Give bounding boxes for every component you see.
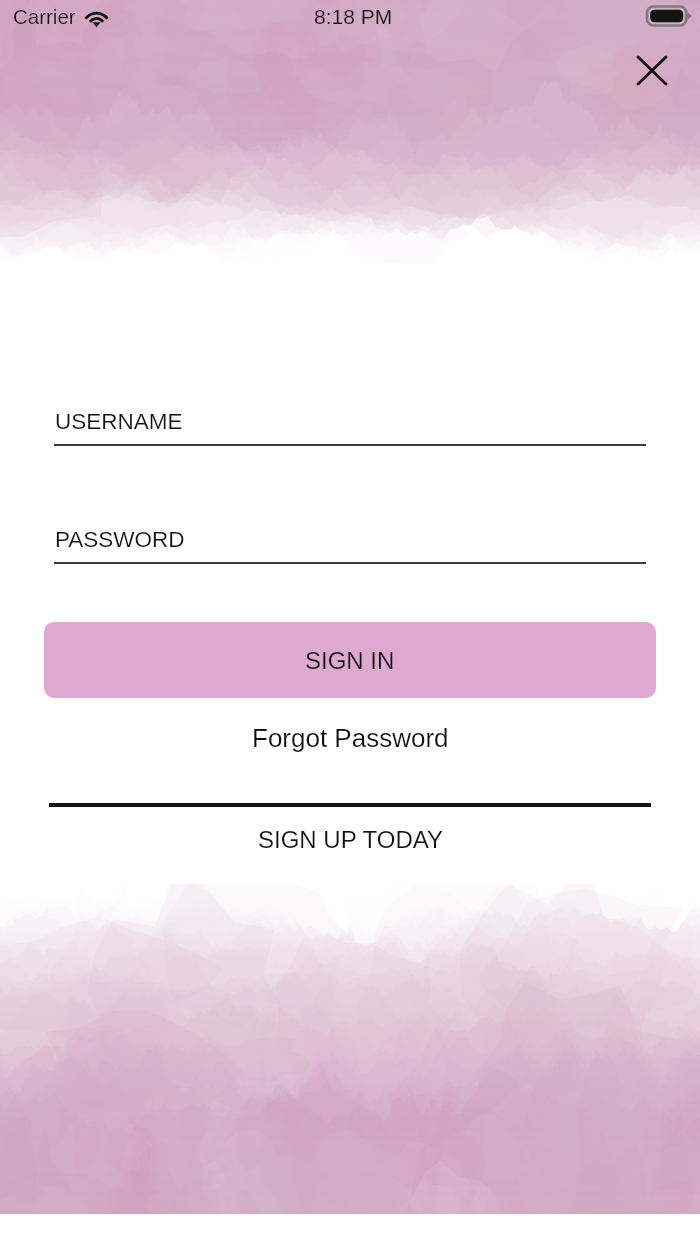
button[interactable]: SIGN IN — [44, 622, 656, 698]
staticText: 8:18 PM — [314, 5, 393, 28]
button[interactable]: Close — [623, 42, 680, 99]
button[interactable]: Forgot Password — [0, 714, 700, 760]
button[interactable]: SIGN UP TODAY — [0, 818, 700, 860]
staticText: SIGN UP TODAY — [258, 826, 443, 853]
staticText: SIGN IN — [305, 647, 395, 674]
staticText: PASSWORD — [55, 527, 185, 552]
staticText: USERNAME — [55, 409, 183, 434]
staticText: Forgot Password — [252, 723, 449, 752]
staticText: Carrier — [13, 5, 76, 28]
